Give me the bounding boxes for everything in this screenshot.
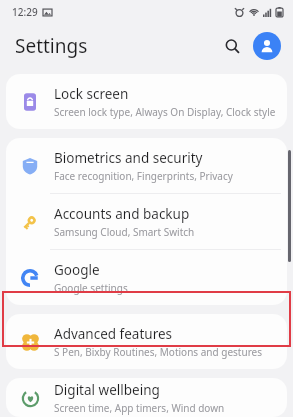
button[interactable]: Biometrics and security xyxy=(6,138,287,193)
staticText: Settings xyxy=(15,33,88,59)
staticText: Accounts and backup xyxy=(54,205,190,223)
button[interactable]: Accounts and backup xyxy=(6,194,287,249)
button[interactable]: Google xyxy=(6,250,287,305)
staticText: Screen lock type, Always On Display, Clo… xyxy=(54,105,276,119)
staticText: Biometrics and security xyxy=(54,149,203,167)
staticText: Digital wellbeing xyxy=(54,381,160,399)
button[interactable]: Digital wellbeing xyxy=(6,378,287,417)
staticText: Lock screen xyxy=(54,85,129,103)
button[interactable]: Advanced features xyxy=(6,314,287,369)
staticText: S Pen, Bixby Routines, Motions and gestu… xyxy=(54,345,262,359)
staticText: Screen time, App timers, Wind down xyxy=(54,401,225,415)
staticText: Samsung Cloud, Smart Switch xyxy=(54,225,195,239)
staticText: Advanced features xyxy=(54,325,173,343)
staticText: Google xyxy=(54,261,100,279)
button[interactable]: Lock screen xyxy=(6,74,287,129)
staticText: Google settings xyxy=(54,281,128,295)
button[interactable]: Account xyxy=(253,32,281,60)
button[interactable]: Search xyxy=(217,31,247,61)
staticText: 12:29 xyxy=(12,5,38,19)
staticText: Face recognition, Fingerprints, Privacy xyxy=(54,169,233,183)
